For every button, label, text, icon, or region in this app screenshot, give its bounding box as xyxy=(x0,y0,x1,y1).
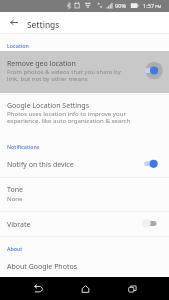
button[interactable]: Home xyxy=(77,278,93,300)
staticText: About Google Photos xyxy=(7,262,78,272)
button[interactable]: Vibrate switch xyxy=(137,213,158,234)
staticText: Tone xyxy=(7,185,23,195)
staticText: Vibrate xyxy=(7,220,31,230)
staticText: Location xyxy=(7,42,29,49)
button[interactable] xyxy=(0,180,169,208)
staticText: Google Location Settings xyxy=(7,101,89,111)
button[interactable]: Remove geo location switch xyxy=(144,60,165,81)
staticText: From photos & videos that you share by l… xyxy=(7,67,121,83)
staticText: Notify on this device xyxy=(7,160,74,170)
staticText: Remove geo location xyxy=(7,59,76,69)
staticText: None xyxy=(7,194,23,202)
button[interactable] xyxy=(0,155,169,177)
staticText: 90% xyxy=(115,2,127,10)
button[interactable]: Notify on this device switch xyxy=(143,153,164,174)
button[interactable] xyxy=(0,95,169,131)
staticText: Settings xyxy=(27,19,60,30)
staticText: Notifications xyxy=(7,143,40,150)
button[interactable] xyxy=(0,214,169,236)
staticText: Photos uses location info to improve you… xyxy=(7,109,131,125)
button[interactable] xyxy=(0,257,169,277)
button[interactable]: Back xyxy=(30,278,46,300)
staticText: About xyxy=(7,245,23,252)
button[interactable] xyxy=(0,51,169,93)
staticText: 1:57 xyxy=(143,2,155,10)
button[interactable]: Recents xyxy=(124,278,140,300)
button[interactable]: Back xyxy=(5,14,22,31)
staticText: PM xyxy=(155,4,162,10)
